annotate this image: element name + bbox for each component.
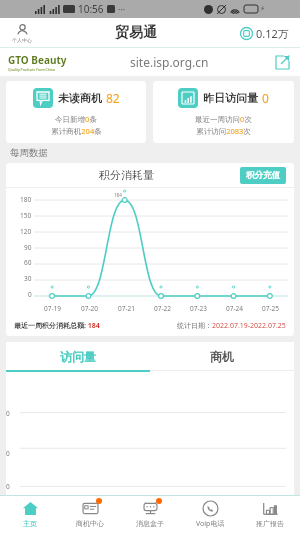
staticText: 10:56 [78,2,104,16]
button[interactable]: 个人中心 [8,22,36,45]
staticText: 0 [28,290,32,299]
staticText: 07-24 [226,304,243,313]
button[interactable]: 昨日访问量 [153,81,294,143]
staticText: 07-20 [81,304,98,313]
staticText: 07-19 [44,304,61,313]
staticText: 60 [24,258,32,267]
staticText: 07-22 [154,304,171,313]
button[interactable]: 打开网站 [272,52,292,72]
staticText: GTO Beauty [8,53,67,67]
staticText: 推广报告 [256,519,284,528]
staticText: 0.12万 [256,26,289,41]
staticText: 消息盒子 [136,519,164,528]
staticText: 0 [6,409,10,418]
staticText: 120 [20,227,32,236]
staticText: 累计商机204条 [51,126,102,136]
button[interactable]: Voip电话 [180,496,240,533]
staticText: 积分消耗量 [99,168,154,182]
button[interactable]: 积分充值 [240,167,286,184]
staticText: 82 [106,90,120,106]
staticText: 150 [20,211,32,220]
staticText: 今日新增0条 [55,114,97,124]
staticText: 贸易通 [115,24,157,42]
staticText: 统计日期：2022.07.19-2022.07.25 [177,321,286,331]
staticText: 180 [20,195,32,204]
staticText: 累计访问2083次 [196,126,251,136]
staticText: Voip电话 [196,519,225,529]
button[interactable]: GTO Beauty [8,48,292,76]
staticText: 访问量 [60,349,96,364]
staticText: 每周数据 [10,147,48,159]
staticText: 0 [6,449,10,458]
staticText: 主页 [23,519,37,528]
staticText: 90 [24,243,32,252]
button[interactable]: 0.12万 [237,23,292,44]
staticText: 商机中心 [76,519,104,528]
button[interactable]: 主页 [0,496,60,533]
staticText: 未读商机 [58,91,102,105]
button[interactable]: 消息盒子 [120,496,180,533]
staticText: 商机 [210,349,234,364]
staticText: Quality Products From China [8,67,55,72]
staticText: 07-21 [118,304,135,313]
staticText: 07-25 [262,304,279,313]
staticText: ··· [118,3,126,15]
staticText: 07-23 [190,304,207,313]
staticText: 昨日访问量 [203,91,258,105]
button[interactable]: 访问量 [6,342,150,370]
staticText: 积分充值 [246,170,280,181]
staticText: ⚡ [260,5,265,13]
staticText: 184 [114,192,122,198]
staticText: 0 [262,90,269,106]
staticText: 个人中心 [12,37,32,43]
staticText: site.isp.org.cn [130,54,209,70]
button[interactable]: 商机 [150,342,294,370]
button[interactable]: 未读商机 [6,81,146,143]
staticText: 0 [6,482,10,491]
button[interactable]: 商机中心 [60,496,120,533]
staticText: 30 [24,274,32,283]
staticText: 最近一周访问0次 [195,114,252,124]
button[interactable]: 推广报告 [240,496,300,533]
staticText: 最近一周积分消耗总额: 184 [14,321,100,331]
